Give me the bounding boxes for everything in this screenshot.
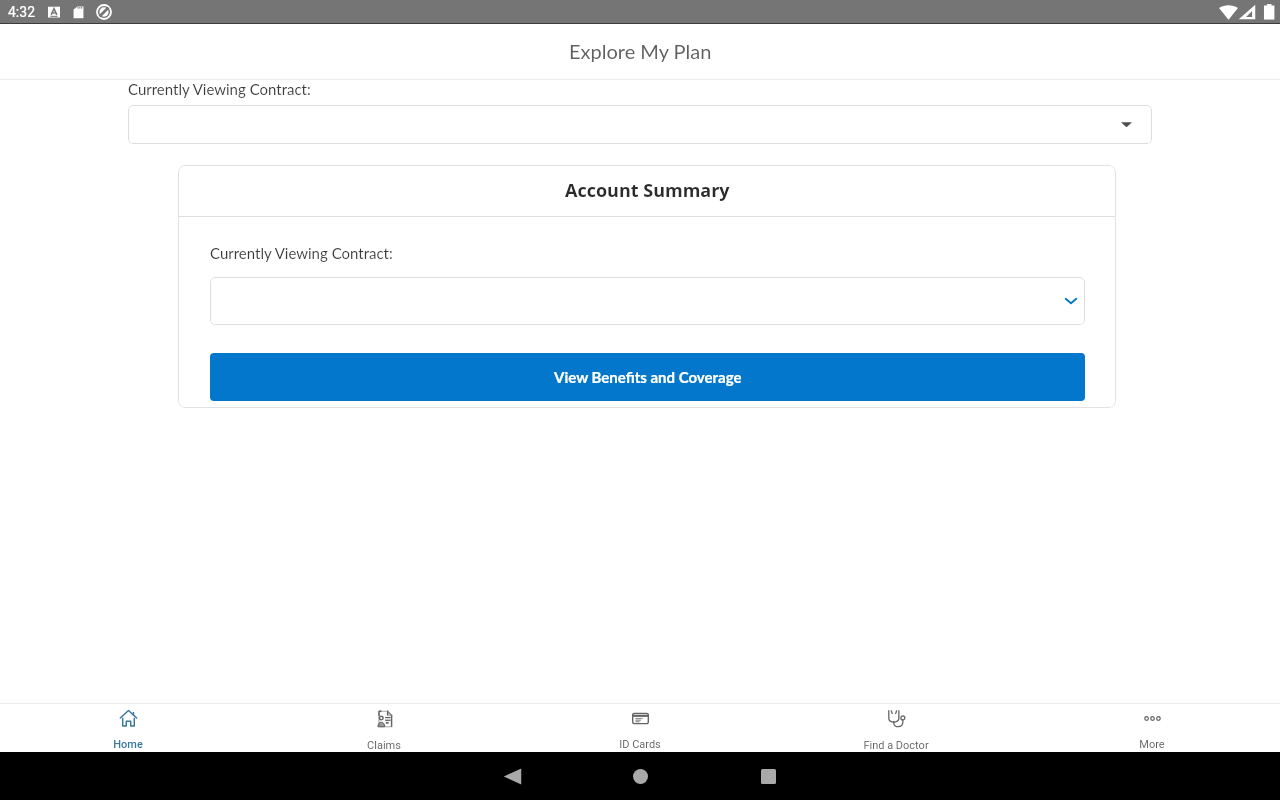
button[interactable]: ID Cards [512, 704, 768, 752]
button[interactable]: Recent apps [746, 754, 790, 798]
staticText: More [1139, 738, 1165, 751]
button[interactable]: Find a Doctor [768, 704, 1024, 752]
staticText: Explore My Plan [569, 39, 712, 63]
staticText: 4:32 [8, 4, 35, 20]
button[interactable]: Back [490, 754, 534, 798]
button[interactable]: Home [0, 704, 256, 752]
button[interactable]: Select contract [128, 105, 1152, 144]
staticText: Currently Viewing Contract: [210, 244, 393, 262]
button[interactable]: View Benefits and Coverage [210, 353, 1085, 401]
staticText: View Benefits and Coverage [554, 368, 742, 386]
staticText: Currently Viewing Contract: [128, 80, 311, 98]
button[interactable]: Home [618, 754, 662, 798]
button[interactable]: Select contract [210, 277, 1085, 325]
button[interactable]: Claims [256, 704, 512, 752]
staticText: Claims [367, 739, 401, 752]
staticText: Find a Doctor [863, 739, 929, 752]
staticText: Home [113, 738, 143, 751]
button[interactable]: More [1024, 704, 1280, 752]
staticText: ID Cards [619, 738, 661, 751]
staticText: Account Summary [565, 178, 730, 203]
